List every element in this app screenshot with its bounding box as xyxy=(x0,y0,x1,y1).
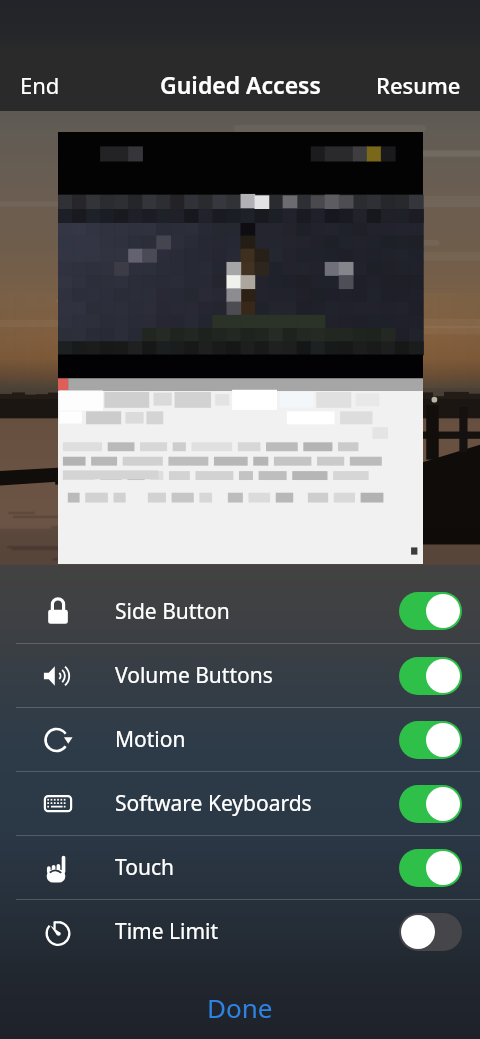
button[interactable]: Motion xyxy=(0,708,480,771)
staticText: Side Button xyxy=(115,597,230,626)
button[interactable]: Touch xyxy=(0,836,480,899)
staticText: Guided Access xyxy=(160,69,321,100)
button[interactable]: Done xyxy=(0,980,480,1035)
staticText: Done xyxy=(207,990,273,1025)
button[interactable]: Off xyxy=(399,913,462,951)
button[interactable]: Side Button xyxy=(0,579,480,643)
button[interactable]: On xyxy=(399,721,462,759)
button[interactable]: End xyxy=(0,60,80,110)
button[interactable]: Volume Buttons xyxy=(0,644,480,707)
staticText: Time Limit xyxy=(115,917,219,946)
staticText: Volume Buttons xyxy=(115,661,273,690)
button[interactable]: Time Limit xyxy=(0,900,480,963)
staticText: Resume xyxy=(376,70,461,100)
staticText: Software Keyboards xyxy=(115,789,312,818)
staticText: Motion xyxy=(115,725,186,754)
button[interactable]: Resume xyxy=(356,60,480,110)
button[interactable]: On xyxy=(399,657,462,695)
button[interactable]: On xyxy=(399,592,462,630)
staticText: End xyxy=(20,70,60,100)
button[interactable]: On xyxy=(399,785,462,823)
button[interactable]: On xyxy=(399,849,462,887)
staticText: Touch xyxy=(115,853,174,882)
button[interactable]: Software Keyboards xyxy=(0,772,480,835)
